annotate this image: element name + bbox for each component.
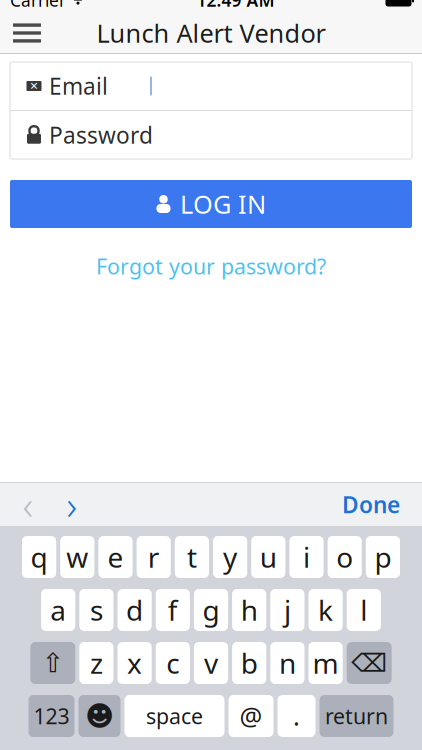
button[interactable]: x — [117, 642, 152, 684]
staticText: i — [303, 538, 310, 576]
staticText: n — [279, 644, 296, 682]
staticText: Password — [49, 120, 153, 150]
button[interactable]: c — [156, 642, 190, 684]
staticText: l — [360, 591, 367, 629]
staticText: 12:49 AM — [196, 0, 274, 11]
staticText: LOG IN — [180, 187, 266, 221]
staticText: Forgot your password? — [96, 252, 326, 280]
staticText: w — [66, 538, 88, 576]
button[interactable]: z — [79, 642, 113, 684]
button[interactable]: @ — [228, 695, 273, 737]
staticText: t — [187, 538, 197, 576]
staticText: Carrier — [10, 0, 66, 11]
staticText: j — [284, 591, 291, 629]
button[interactable]: j — [270, 589, 304, 631]
button[interactable]: m — [308, 642, 343, 684]
button[interactable]: Shift — [30, 642, 75, 684]
staticText: h — [241, 591, 258, 629]
button[interactable]: Previous field — [6, 482, 50, 526]
staticText: z — [90, 644, 103, 682]
staticText: f — [168, 591, 178, 629]
staticText: o — [336, 538, 353, 576]
button[interactable]: e — [98, 536, 133, 578]
button[interactable]: Forgot your password? — [82, 245, 340, 287]
staticText: e — [107, 538, 123, 576]
button[interactable]: q — [22, 536, 56, 578]
staticText: ‹ — [22, 478, 33, 531]
button[interactable]: l — [347, 589, 381, 631]
staticText: b — [241, 644, 258, 682]
staticText: ⌫ — [351, 649, 387, 677]
button[interactable]: Emoji — [78, 695, 120, 737]
staticText: s — [90, 591, 103, 629]
staticText: x — [127, 644, 142, 682]
button[interactable]: f — [156, 589, 190, 631]
button[interactable]: a — [41, 589, 75, 631]
button[interactable]: i — [289, 536, 324, 578]
staticText: ✕ — [29, 80, 38, 92]
staticText: 123 — [33, 702, 69, 730]
button[interactable]: t — [175, 536, 209, 578]
staticText: u — [260, 538, 277, 576]
staticText: y — [223, 538, 237, 576]
button[interactable]: . — [277, 695, 315, 737]
button[interactable]: n — [270, 642, 304, 684]
staticText: Lunch Alert Vendor — [96, 16, 325, 50]
staticText: ☻ — [85, 700, 114, 732]
staticText: return — [325, 702, 388, 730]
button[interactable]: y — [213, 536, 247, 578]
button[interactable]: Numbers — [28, 695, 74, 737]
staticText: a — [50, 591, 66, 629]
staticText: Email — [49, 71, 108, 101]
button[interactable]: space — [124, 695, 224, 737]
button[interactable]: h — [232, 589, 266, 631]
staticText: › — [66, 478, 77, 531]
staticText: c — [166, 644, 179, 682]
button[interactable]: v — [194, 642, 228, 684]
button[interactable]: s — [79, 589, 113, 631]
staticText: g — [202, 591, 219, 629]
button[interactable]: k — [308, 589, 343, 631]
staticText: Done — [342, 489, 400, 519]
button[interactable]: d — [117, 589, 152, 631]
button[interactable]: b — [232, 642, 266, 684]
staticText: q — [31, 538, 48, 576]
staticText: p — [374, 538, 391, 576]
staticText: @ — [239, 699, 262, 733]
button[interactable]: Return — [319, 695, 393, 737]
button[interactable]: Menu — [0, 11, 54, 55]
staticText: k — [318, 591, 333, 629]
button[interactable]: LOG IN — [10, 180, 412, 228]
button[interactable]: g — [194, 589, 228, 631]
button[interactable]: u — [251, 536, 285, 578]
button[interactable]: Next field — [50, 482, 94, 526]
staticText: . — [293, 699, 300, 733]
button[interactable]: r — [137, 536, 171, 578]
staticText: d — [126, 591, 143, 629]
button[interactable]: Delete — [347, 642, 392, 684]
staticText: ⇧ — [42, 648, 64, 678]
staticText: m — [313, 644, 339, 682]
staticText: space — [146, 702, 203, 730]
button[interactable]: Done — [328, 479, 414, 529]
button[interactable]: o — [328, 536, 362, 578]
staticText: v — [204, 644, 218, 682]
button[interactable]: p — [366, 536, 400, 578]
button[interactable]: w — [60, 536, 94, 578]
staticText: r — [148, 538, 160, 576]
